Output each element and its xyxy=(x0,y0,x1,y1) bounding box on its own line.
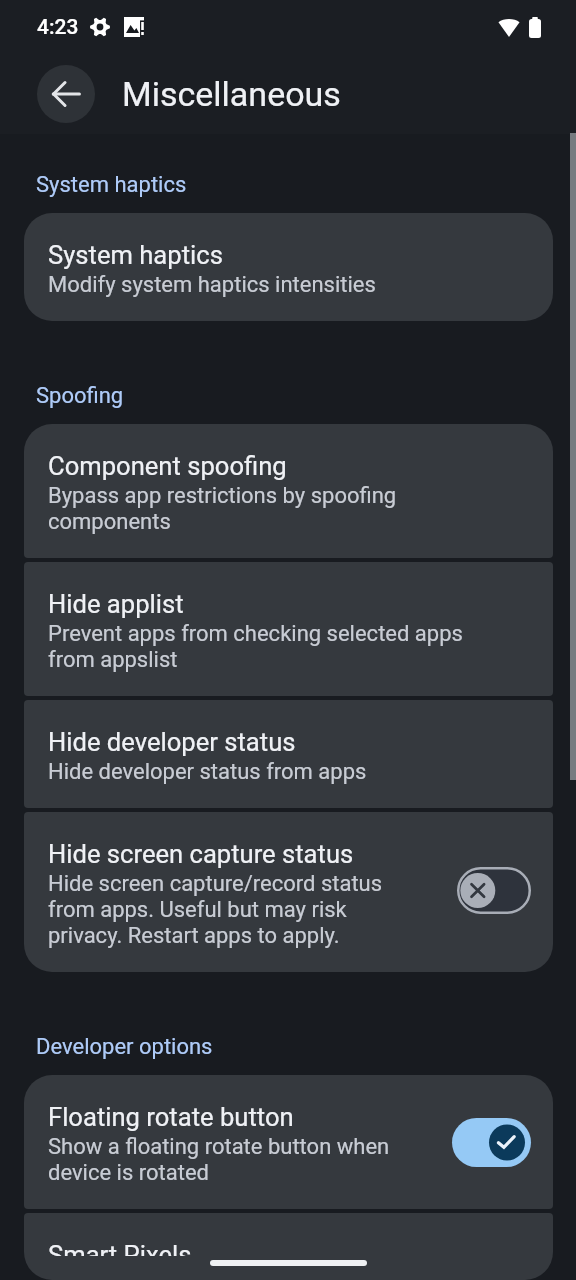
staticText: Developer options xyxy=(36,1034,213,1060)
staticText: Hide applist xyxy=(48,586,184,620)
button[interactable]: Hide screen capture status xyxy=(24,812,553,972)
button[interactable]: Component spoofing xyxy=(24,424,553,558)
staticText: Prevent apps from checking selected apps… xyxy=(48,620,491,672)
button[interactable]: Hide applist xyxy=(24,562,553,696)
staticText: Modify system haptics intensities xyxy=(48,271,376,297)
button[interactable]: Floating rotate button xyxy=(24,1075,553,1209)
staticText: Spoofing xyxy=(36,383,124,409)
staticText: 4:23 xyxy=(37,15,79,40)
staticText: Hide screen capture/record status from a… xyxy=(48,870,417,948)
staticText: Floating rotate button xyxy=(48,1099,294,1133)
button[interactable]: System haptics xyxy=(24,213,553,321)
staticText: Component spoofing xyxy=(48,448,287,482)
staticText: Hide developer status xyxy=(48,724,296,758)
staticText: Bypass app restrictions by spoofing comp… xyxy=(48,482,491,534)
staticText: System haptics xyxy=(48,237,223,271)
button[interactable]: Smart Pixels xyxy=(24,1213,553,1280)
staticText: Smart Pixels xyxy=(48,1237,192,1256)
staticText: Hide screen capture status xyxy=(48,836,354,870)
staticText: Hide developer status from apps xyxy=(48,758,367,784)
button[interactable]: Hide developer status xyxy=(24,700,553,808)
button[interactable]: Back xyxy=(37,65,95,123)
staticText: Show a floating rotate button when devic… xyxy=(48,1133,412,1185)
staticText: System haptics xyxy=(36,172,187,198)
staticText: Miscellaneous xyxy=(122,74,341,114)
